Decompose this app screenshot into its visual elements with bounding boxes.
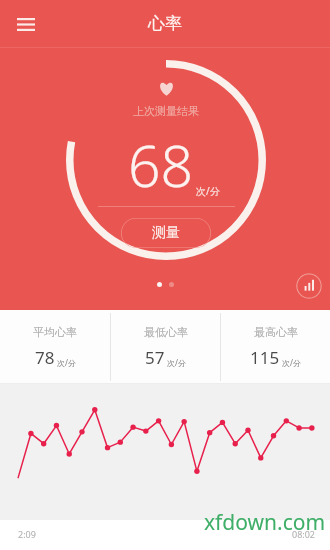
staticText: 68: [128, 126, 194, 204]
staticText: 平均心率: [33, 325, 77, 339]
staticText: 115: [250, 346, 280, 369]
staticText: 08:02: [292, 528, 316, 540]
staticText: 次/分: [57, 357, 76, 368]
staticText: 次/分: [196, 184, 220, 198]
staticText: 78: [35, 346, 55, 369]
staticText: xfdown.com: [204, 508, 326, 537]
staticText: 上次测量结果: [133, 104, 199, 118]
button[interactable]: Menu: [8, 6, 44, 42]
staticText: 测量: [152, 224, 180, 242]
staticText: 57: [145, 346, 165, 369]
button[interactable]: 平均心率: [0, 310, 110, 384]
button[interactable]: 测量: [121, 218, 211, 248]
staticText: 次/分: [282, 357, 301, 368]
staticText: 最低心率: [144, 325, 188, 339]
staticText: 2:09: [18, 528, 36, 540]
button[interactable]: 最低心率: [111, 310, 220, 384]
staticText: 心率: [148, 13, 182, 34]
staticText: 最高心率: [254, 325, 298, 339]
button[interactable]: 最高心率: [221, 310, 330, 384]
staticText: 次/分: [167, 357, 186, 368]
button[interactable]: Statistics: [296, 273, 322, 299]
